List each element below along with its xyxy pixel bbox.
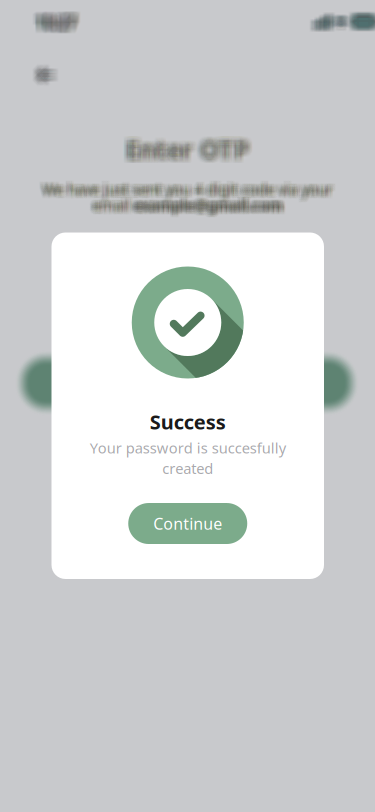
staticText: example@gmail.com — [133, 192, 282, 211]
staticText: Enter OTP — [125, 129, 249, 162]
staticText: example@gmail.com — [133, 199, 282, 218]
staticText: 10:27 — [40, 16, 80, 38]
staticText: email — [89, 193, 127, 213]
staticText: example@gmail.com — [136, 193, 285, 213]
staticText: 10:27 — [32, 10, 72, 32]
staticText: example@gmail.com — [132, 199, 281, 218]
staticText: email — [93, 196, 131, 215]
staticText: We have just sent you 4 digit code via y… — [43, 179, 333, 198]
staticText: 10:27 — [40, 8, 80, 30]
staticText: example@gmail.com — [136, 196, 285, 215]
staticText: 10:27 — [34, 7, 74, 29]
staticText: Enter OTP — [124, 135, 248, 168]
staticText: email — [90, 193, 128, 213]
staticText: 10:27 — [40, 11, 80, 33]
staticText: Enter OTP — [121, 136, 245, 170]
staticText: Enter OTP — [129, 131, 253, 165]
staticText: 10:27 — [38, 13, 78, 35]
button[interactable]: Continue — [128, 503, 247, 544]
staticText: Enter OTP — [129, 135, 253, 168]
staticText: Enter OTP — [125, 131, 249, 165]
staticText: 10:27 — [31, 7, 71, 29]
staticText: 10:27 — [34, 6, 74, 28]
staticText: email — [92, 195, 130, 215]
staticText: example@gmail.com — [135, 195, 284, 215]
staticText: 10:27 — [32, 7, 72, 29]
staticText: 10:27 — [39, 10, 79, 32]
staticText: email — [91, 195, 129, 215]
staticText: We have just sent you 4 digit code via y… — [45, 181, 335, 201]
staticText: example@gmail.com — [131, 197, 280, 217]
staticText: Enter OTP — [121, 136, 245, 169]
staticText: Enter OTP — [124, 133, 248, 167]
staticText: We have just sent you 4 digit code via y… — [42, 182, 332, 202]
staticText: example@gmail.com — [130, 196, 279, 215]
staticText: We have just sent you 4 digit code via y… — [39, 182, 329, 202]
staticText: email — [92, 198, 130, 218]
staticText: example@gmail.com — [130, 198, 279, 218]
staticText: example@gmail.com — [136, 192, 285, 212]
staticText: Enter OTP — [123, 130, 247, 163]
staticText: email — [89, 199, 127, 218]
staticText: Enter OTP — [121, 133, 245, 167]
staticText: example@gmail.com — [136, 196, 285, 215]
staticText: example@gmail.com — [137, 199, 286, 218]
staticText: email — [94, 199, 132, 218]
staticText: email — [93, 192, 131, 212]
staticText: We have just sent you 4 digit code via y… — [41, 178, 331, 197]
staticText: email — [89, 197, 127, 217]
staticText: email — [96, 197, 134, 217]
staticText: example@gmail.com — [131, 197, 280, 216]
staticText: email — [90, 197, 128, 217]
staticText: email — [96, 195, 134, 214]
staticText: example@gmail.com — [136, 195, 285, 215]
staticText: example@gmail.com — [130, 195, 279, 215]
staticText: We have just sent you 4 digit code via y… — [40, 179, 330, 199]
staticText: Enter OTP — [126, 134, 250, 167]
button[interactable]: Back — [24, 53, 68, 97]
staticText: example@gmail.com — [130, 197, 279, 216]
staticText: email — [89, 192, 127, 211]
staticText: example@gmail.com — [136, 198, 285, 218]
staticText: example@gmail.com — [136, 192, 285, 211]
staticText: Enter OTP — [122, 130, 246, 163]
staticText: example@gmail.com — [133, 192, 282, 212]
staticText: 10:27 — [35, 11, 75, 33]
staticText: example@gmail.com — [137, 193, 286, 213]
staticText: We have just sent you 4 digit code via y… — [44, 177, 334, 197]
staticText: example@gmail.com — [133, 192, 282, 211]
staticText: Enter OTP — [128, 136, 252, 170]
staticText: email — [92, 199, 130, 218]
staticText: email — [90, 194, 128, 213]
staticText: Enter OTP — [127, 130, 251, 164]
staticText: example@gmail.com — [136, 193, 285, 213]
staticText: We have just sent you 4 digit code via y… — [43, 178, 333, 197]
staticText: We have just sent you 4 digit code via y… — [44, 180, 334, 199]
staticText: example@gmail.com — [132, 196, 281, 215]
staticText: email — [89, 192, 127, 212]
staticText: Enter OTP — [122, 131, 246, 165]
staticText: email — [90, 192, 128, 211]
staticText: 10:27 — [32, 6, 72, 28]
staticText: We have just sent you 4 digit code via y… — [40, 181, 330, 200]
staticText: Enter OTP — [124, 136, 248, 170]
staticText: email — [95, 192, 133, 212]
staticText: Enter OTP — [129, 132, 253, 166]
staticText: email — [94, 197, 132, 217]
staticText: We have just sent you 4 digit code via y… — [39, 176, 329, 196]
staticText: example@gmail.com — [136, 192, 285, 212]
staticText: email — [95, 194, 133, 213]
staticText: email — [91, 194, 129, 213]
staticText: We have just sent you 4 digit code via y… — [46, 179, 336, 198]
staticText: email — [90, 197, 128, 216]
staticText: example@gmail.com — [133, 199, 282, 218]
staticText: Enter OTP — [126, 136, 250, 169]
staticText: 10:27 — [33, 14, 73, 36]
staticText: 10:27 — [32, 16, 72, 38]
staticText: Enter OTP — [125, 134, 249, 167]
staticText: We have just sent you 4 digit code via y… — [42, 182, 332, 202]
staticText: example@gmail.com — [133, 196, 282, 215]
staticText: We have just sent you 4 digit code via y… — [40, 180, 330, 199]
staticText: 10:27 — [40, 6, 80, 28]
staticText: email — [95, 197, 133, 216]
